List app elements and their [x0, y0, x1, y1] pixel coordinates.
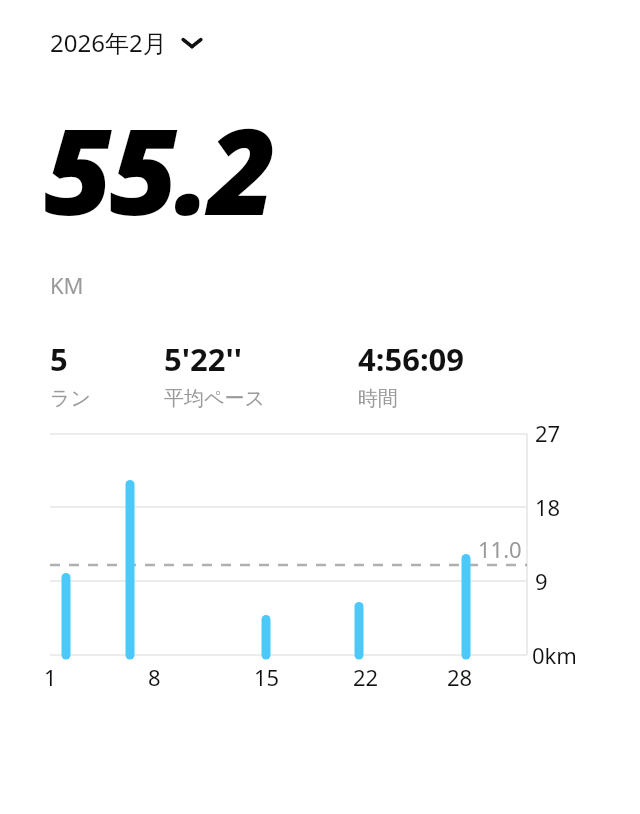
button[interactable]: 4:56:09 — [358, 338, 471, 411]
staticText: 4:56:09 — [358, 338, 465, 380]
staticText: 平均ペース — [164, 386, 265, 411]
staticText: 27 — [535, 418, 561, 448]
staticText: ラン — [50, 386, 91, 411]
staticText: 0km — [532, 640, 577, 670]
staticText: 9 — [535, 566, 548, 596]
staticText: 5'22'' — [164, 338, 242, 380]
button[interactable]: 5 — [50, 338, 97, 411]
staticText: 1 — [44, 662, 57, 692]
staticText: 時間 — [358, 386, 398, 411]
staticText: 18 — [535, 492, 561, 522]
button[interactable]: 5'22'' — [164, 338, 271, 411]
staticText: 8 — [148, 662, 161, 692]
staticText: 15 — [254, 662, 280, 692]
staticText: 5 — [50, 338, 68, 380]
staticText: KM — [50, 270, 84, 300]
staticText: 28 — [447, 662, 473, 692]
other: Change month — [181, 36, 203, 50]
staticText: 11.0 — [478, 534, 522, 564]
staticText: 2026年2月 — [50, 26, 167, 59]
staticText: 55.2 — [44, 89, 274, 250]
button[interactable]: 2026年2月 — [50, 24, 211, 61]
staticText: 22 — [353, 662, 379, 692]
